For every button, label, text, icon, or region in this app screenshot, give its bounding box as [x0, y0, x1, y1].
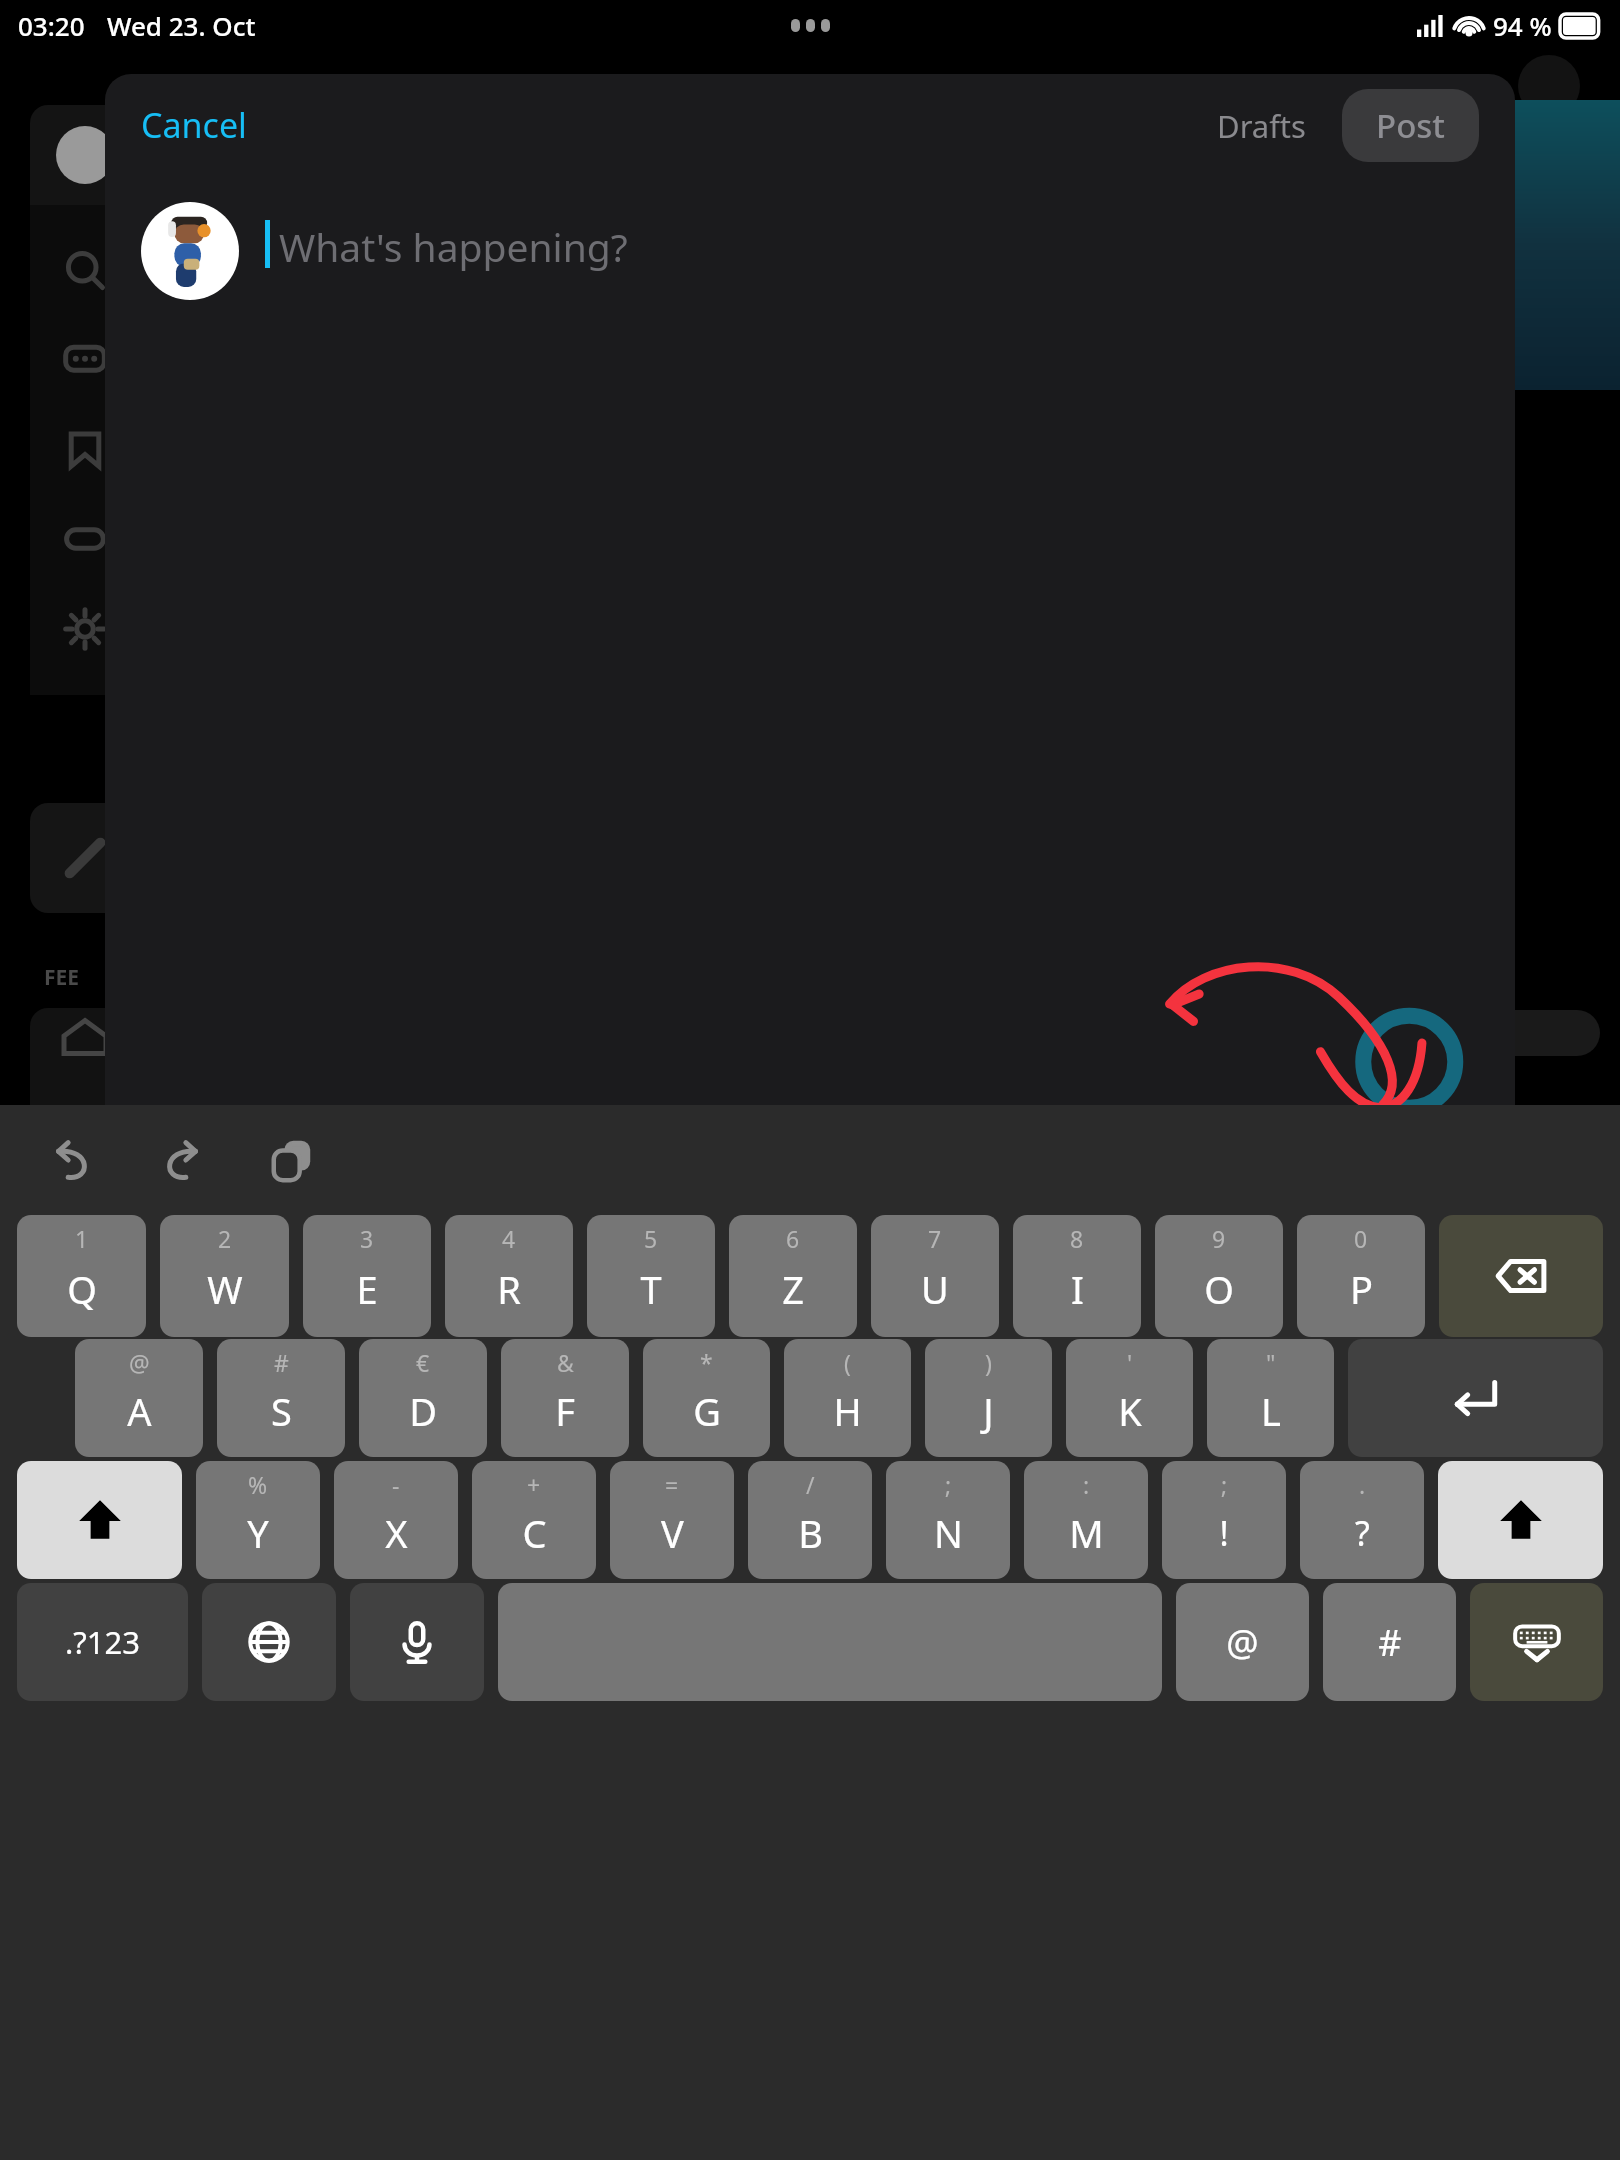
button[interactable]: ; [1162, 1461, 1286, 1579]
staticText: Wed 23. Oct [107, 8, 256, 43]
button[interactable]: : [1024, 1461, 1148, 1579]
staticText: . [1359, 1469, 1366, 1500]
button[interactable]: € [359, 1339, 487, 1457]
button[interactable]: 9 [1155, 1215, 1283, 1337]
button[interactable]: = [610, 1461, 734, 1579]
button[interactable]: # [217, 1339, 345, 1457]
button[interactable]: + [472, 1461, 596, 1579]
staticText: I [1071, 1263, 1084, 1315]
staticText: @ [1226, 1618, 1259, 1667]
button[interactable]: Space [498, 1583, 1162, 1701]
staticText: Post [1376, 103, 1445, 148]
staticText: O [1204, 1263, 1234, 1315]
staticText: ? [1355, 1510, 1370, 1556]
button[interactable]: EN [1342, 1429, 1415, 1503]
button[interactable]: Voice input [350, 1583, 484, 1701]
button[interactable]: ) [925, 1339, 1052, 1457]
button[interactable]: Redo [140, 1118, 224, 1202]
staticText: = [665, 1469, 679, 1500]
button[interactable]: & [501, 1339, 629, 1457]
staticText: J [983, 1385, 994, 1437]
button[interactable]: Enter [1348, 1339, 1603, 1457]
staticText: ( [844, 1347, 851, 1378]
button[interactable]: @ [1176, 1583, 1309, 1701]
button[interactable]: ; [886, 1461, 1010, 1579]
staticText: 4 [502, 1223, 516, 1254]
button[interactable]: ' [1066, 1339, 1193, 1457]
button[interactable]: Cancel [105, 92, 283, 158]
staticText: T [640, 1263, 662, 1315]
button[interactable]: Shift [17, 1461, 182, 1579]
staticText: Q [67, 1263, 97, 1315]
button[interactable]: 4 [445, 1215, 573, 1337]
staticText: - [392, 1469, 400, 1500]
button[interactable]: Files [249, 1426, 329, 1506]
staticText: % [248, 1469, 268, 1500]
button[interactable]: - [334, 1461, 458, 1579]
staticText: Z [782, 1263, 804, 1315]
staticText: / [806, 1469, 815, 1500]
staticText: € [416, 1347, 430, 1378]
staticText: ; [945, 1469, 952, 1500]
button[interactable]: Hide keyboard [1470, 1583, 1603, 1701]
staticText: " [1266, 1347, 1276, 1378]
staticText: X [385, 1507, 408, 1559]
button[interactable]: @ [75, 1339, 203, 1457]
staticText: @ [129, 1347, 150, 1378]
button[interactable]: * [643, 1339, 770, 1457]
button[interactable]: Post [1342, 89, 1479, 162]
button[interactable]: " [1207, 1339, 1334, 1457]
staticText: .?123 [65, 1621, 140, 1663]
button[interactable]: 7 [871, 1215, 999, 1337]
button[interactable]: 6 [729, 1215, 857, 1337]
staticText: EN [1356, 1443, 1401, 1489]
button[interactable]: 5 [587, 1215, 715, 1337]
staticText: B [798, 1507, 823, 1559]
staticText: W [207, 1263, 243, 1315]
button[interactable]: Backspace [1439, 1215, 1603, 1337]
staticText: 7 [928, 1223, 942, 1254]
button[interactable]: 2 [160, 1215, 289, 1337]
button[interactable]: % [196, 1461, 320, 1579]
staticText: A [127, 1385, 152, 1437]
staticText: Cancel [141, 102, 247, 148]
staticText: 8 [1070, 1223, 1084, 1254]
staticText: 1 [75, 1223, 89, 1254]
button[interactable]: 8 [1013, 1215, 1141, 1337]
staticText: & [557, 1347, 574, 1378]
button[interactable]: 3 [303, 1215, 431, 1337]
staticText: * [700, 1347, 713, 1378]
staticText: ; [1221, 1469, 1228, 1500]
staticText: 9 [1212, 1223, 1226, 1254]
button[interactable]: Warning [365, 1427, 443, 1505]
button[interactable]: Everyone can reply [105, 1322, 539, 1386]
staticText: FEE [44, 963, 80, 992]
button[interactable]: Drafts [1205, 95, 1318, 157]
staticText: S [271, 1385, 292, 1437]
staticText: : [1083, 1469, 1090, 1500]
button[interactable]: Add [1437, 1439, 1491, 1493]
staticText: # [274, 1347, 289, 1378]
button[interactable]: .?123 [17, 1583, 188, 1701]
button[interactable]: 0 [1297, 1215, 1425, 1337]
button[interactable]: 1 [17, 1215, 146, 1337]
button[interactable]: . [1300, 1461, 1424, 1579]
staticText: 0 [1354, 1223, 1368, 1254]
button[interactable]: Language [202, 1583, 336, 1701]
button[interactable]: Undo [30, 1118, 114, 1202]
button[interactable]: ( [784, 1339, 911, 1457]
staticText: V [661, 1507, 684, 1559]
button[interactable]: Add photo [129, 1424, 213, 1508]
staticText: M [1069, 1507, 1104, 1559]
button[interactable]: / [748, 1461, 872, 1579]
staticText: Y [247, 1507, 269, 1559]
button[interactable]: # [1323, 1583, 1456, 1701]
staticText: F [555, 1385, 575, 1437]
button[interactable]: Paste [250, 1118, 334, 1202]
staticText: ' [1127, 1347, 1133, 1378]
staticText: # [1378, 1618, 1402, 1667]
staticText: L [1261, 1385, 1281, 1437]
staticText: 03:20 [18, 8, 85, 43]
button[interactable]: Shift [1438, 1461, 1603, 1579]
staticText: ! [1219, 1510, 1229, 1556]
